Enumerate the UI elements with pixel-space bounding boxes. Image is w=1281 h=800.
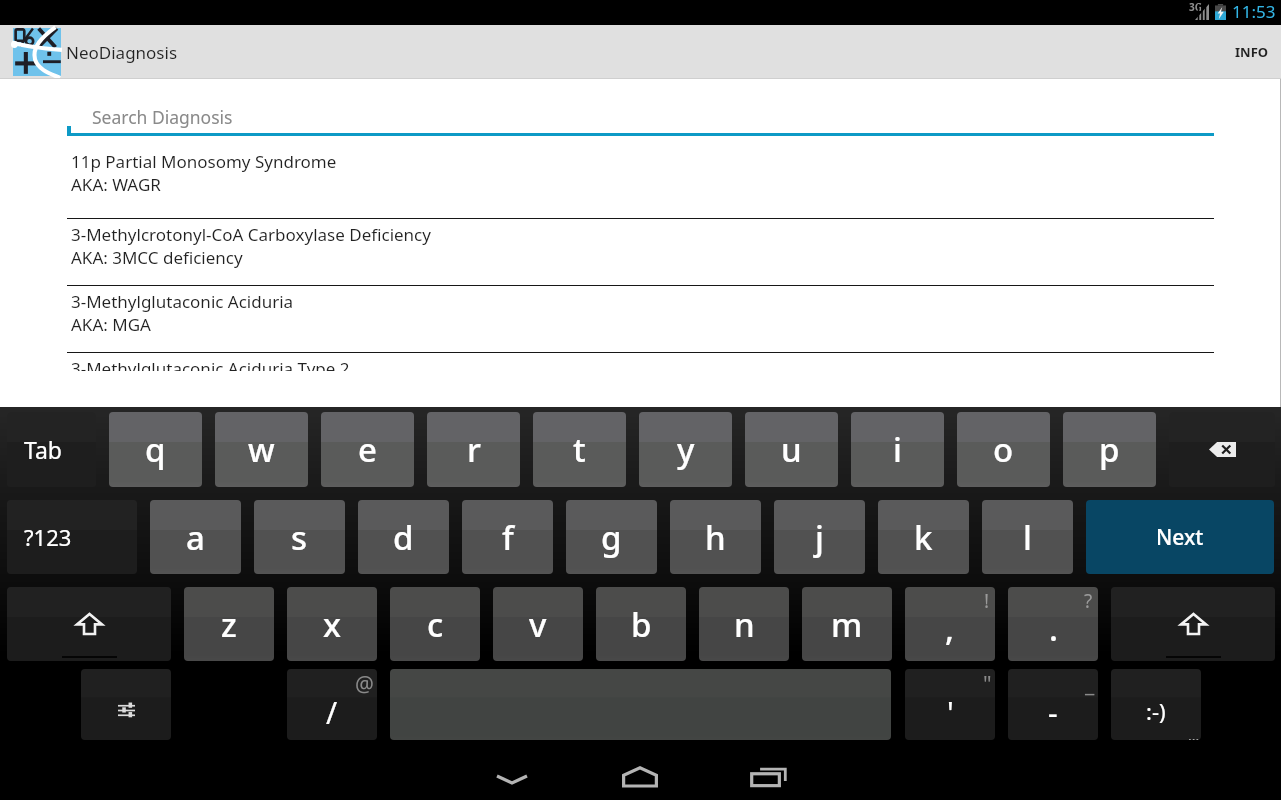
button[interactable]: g: [566, 500, 657, 574]
staticText: 3-Methylcrotonyl-CoA Carboxylase Deficie…: [71, 223, 431, 246]
button[interactable]: -: [1008, 669, 1098, 740]
button[interactable]: Tab: [7, 412, 96, 487]
staticText: e: [358, 427, 377, 472]
staticText: d: [393, 515, 414, 560]
button[interactable]: v: [493, 587, 583, 661]
button[interactable]: INFO: [1210, 25, 1281, 79]
staticText: INFO: [1235, 43, 1269, 61]
button[interactable]: 3-Methylglutaconic Aciduria Type 2: [67, 352, 1214, 371]
staticText: l: [1023, 515, 1032, 560]
button[interactable]: 3-Methylcrotonyl-CoA Carboxylase Deficie…: [67, 218, 1214, 285]
staticText: q: [145, 427, 166, 472]
staticText: !: [984, 588, 990, 614]
staticText: :-): [1146, 696, 1166, 726]
button[interactable]: Search Diagnosis: [67, 99, 1214, 136]
button[interactable]: o: [957, 412, 1050, 487]
button[interactable]: q: [109, 412, 202, 487]
button[interactable]: z: [184, 587, 274, 661]
button[interactable]: Keyboard settings: [81, 669, 171, 740]
staticText: f: [502, 515, 514, 560]
button[interactable]: h: [670, 500, 761, 574]
staticText: 11p Partial Monosomy Syndrome: [71, 150, 337, 173]
staticText: j: [815, 515, 824, 560]
staticText: AKA: MGA: [71, 313, 151, 336]
button[interactable]: u: [745, 412, 838, 487]
staticText: u: [781, 427, 802, 472]
button[interactable]: f: [462, 500, 553, 574]
button[interactable]: ?123: [7, 500, 137, 574]
button[interactable]: ,: [905, 587, 995, 661]
staticText: v: [529, 602, 547, 647]
staticText: k: [914, 515, 933, 560]
button[interactable]: Emoticons: [1111, 669, 1201, 740]
button[interactable]: p: [1063, 412, 1156, 487]
staticText: i: [893, 427, 902, 472]
button[interactable]: e: [321, 412, 414, 487]
staticText: 3-Methylglutaconic Aciduria Type 2: [71, 357, 350, 371]
staticText: ?123: [24, 522, 72, 552]
button[interactable]: n: [699, 587, 789, 661]
staticText: t: [573, 427, 586, 472]
staticText: y: [677, 427, 695, 472]
button[interactable]: w: [215, 412, 308, 487]
staticText: w: [248, 427, 275, 472]
staticText: ": [983, 670, 992, 699]
staticText: Next: [1156, 523, 1204, 552]
staticText: h: [705, 515, 726, 560]
staticText: ...: [1188, 726, 1200, 740]
button[interactable]: Backspace: [1169, 412, 1275, 487]
staticText: 3-Methylglutaconic Aciduria: [71, 290, 294, 313]
staticText: m: [831, 602, 863, 647]
button[interactable]: t: [533, 412, 626, 487]
staticText: 3G: [1189, 0, 1202, 14]
staticText: p: [1099, 427, 1120, 472]
staticText: AKA: WAGR: [71, 173, 161, 196]
staticText: Search Diagnosis: [92, 105, 233, 129]
button[interactable]: Hide keyboard: [448, 750, 576, 800]
staticText: AKA: 3MCC deficiency: [71, 246, 243, 269]
button[interactable]: y: [639, 412, 732, 487]
staticText: ': [947, 692, 954, 733]
button[interactable]: a: [150, 500, 241, 574]
staticText: n: [734, 602, 755, 647]
button[interactable]: x: [287, 587, 377, 661]
staticText: Tab: [24, 434, 62, 465]
button[interactable]: b: [596, 587, 686, 661]
staticText: o: [993, 427, 1014, 472]
staticText: NeoDiagnosis: [66, 41, 178, 64]
button[interactable]: Recents: [704, 750, 832, 800]
button[interactable]: l: [982, 500, 1073, 574]
staticText: c: [427, 602, 444, 647]
staticText: b: [631, 602, 652, 647]
button[interactable]: 3-Methylglutaconic Aciduria: [67, 285, 1214, 352]
staticText: ,: [945, 606, 955, 651]
button[interactable]: ': [905, 669, 995, 740]
staticText: x: [323, 602, 341, 647]
staticText: ?: [1084, 588, 1093, 614]
button[interactable]: d: [358, 500, 449, 574]
button[interactable]: 11p Partial Monosomy Syndrome: [67, 146, 1214, 218]
staticText: z: [221, 602, 237, 647]
button[interactable]: i: [851, 412, 944, 487]
staticText: g: [601, 515, 622, 560]
button[interactable]: Home: [576, 750, 704, 800]
button[interactable]: Shift: [1111, 587, 1275, 661]
staticText: /: [326, 692, 338, 733]
staticText: -: [1048, 692, 1058, 733]
button[interactable]: /: [287, 669, 377, 740]
button[interactable]: Next: [1086, 500, 1274, 574]
button[interactable]: Shift: [7, 587, 171, 661]
button[interactable]: j: [774, 500, 865, 574]
button[interactable]: r: [427, 412, 520, 487]
staticText: @: [355, 670, 374, 699]
button[interactable]: c: [390, 587, 480, 661]
staticText: _: [1085, 670, 1095, 699]
button[interactable]: .: [1008, 587, 1098, 661]
staticText: .: [1049, 606, 1058, 651]
staticText: s: [291, 515, 308, 560]
staticText: a: [186, 515, 205, 560]
button[interactable]: m: [802, 587, 892, 661]
button[interactable]: k: [878, 500, 969, 574]
button[interactable]: s: [254, 500, 345, 574]
